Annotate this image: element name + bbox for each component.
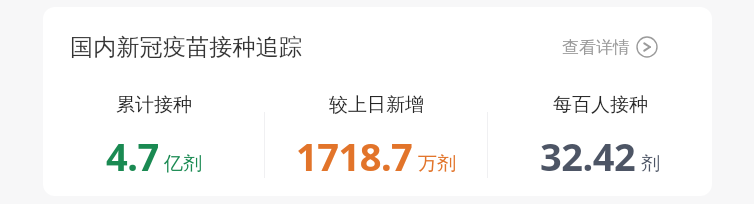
- button[interactable]: 查看详情: [559, 32, 661, 62]
- button[interactable]: 较上日新增: [265, 85, 487, 180]
- staticText: 累计接种: [116, 93, 192, 117]
- staticText: 32.42: [540, 130, 636, 180]
- staticText: 1718.7: [296, 130, 413, 180]
- staticText: 亿剂: [164, 152, 202, 176]
- staticText: 国内新冠疫苗接种追踪: [70, 33, 302, 62]
- staticText: 4.7: [106, 130, 159, 180]
- staticText: 较上日新增: [329, 93, 424, 117]
- button[interactable]: 每百人接种: [488, 85, 712, 180]
- staticText: 查看详情: [562, 37, 630, 58]
- other: 查看详情: [636, 36, 658, 58]
- staticText: 剂: [641, 152, 660, 176]
- button[interactable]: 累计接种: [43, 85, 264, 180]
- staticText: 万剂: [418, 152, 456, 176]
- staticText: 每百人接种: [553, 93, 648, 117]
